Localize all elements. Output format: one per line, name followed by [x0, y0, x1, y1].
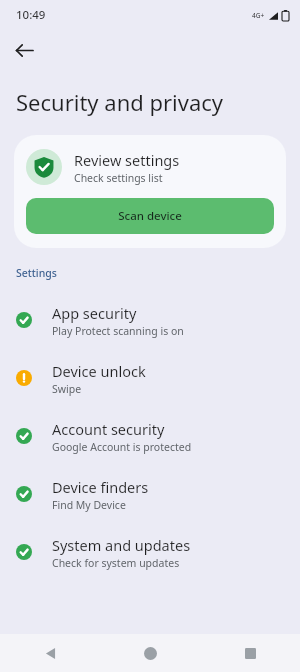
button[interactable]: System and updates — [0, 523, 300, 581]
button[interactable]: Device unlock — [0, 349, 300, 407]
staticText: Find My Device — [52, 498, 126, 512]
staticText: 4G+ — [252, 11, 265, 20]
button[interactable]: Back — [6, 32, 42, 68]
staticText: Security and privacy — [16, 87, 224, 117]
staticText: 10:49 — [16, 7, 46, 23]
staticText: Google Account is protected — [52, 440, 192, 454]
staticText: Account security — [52, 419, 165, 439]
button[interactable]: Review settings — [14, 135, 286, 248]
button[interactable]: Device finders — [0, 465, 300, 523]
staticText: Scan device — [118, 208, 182, 224]
button[interactable]: Account security — [0, 407, 300, 465]
staticText: Check settings list — [74, 171, 163, 185]
staticText: Device unlock — [52, 361, 146, 381]
button[interactable]: Back — [28, 634, 72, 672]
button[interactable]: App security — [0, 291, 300, 349]
staticText: Swipe — [52, 382, 82, 396]
button[interactable]: Recent apps — [228, 634, 272, 672]
button[interactable]: Scan device — [26, 198, 274, 234]
staticText: Settings — [16, 266, 57, 280]
staticText: Play Protect scanning is on — [52, 324, 184, 338]
staticText: System and updates — [52, 535, 191, 555]
button[interactable]: Home — [128, 634, 172, 672]
staticText: Device finders — [52, 477, 149, 497]
staticText: App security — [52, 303, 137, 323]
staticText: Check for system updates — [52, 556, 180, 570]
staticText: Review settings — [74, 150, 180, 170]
